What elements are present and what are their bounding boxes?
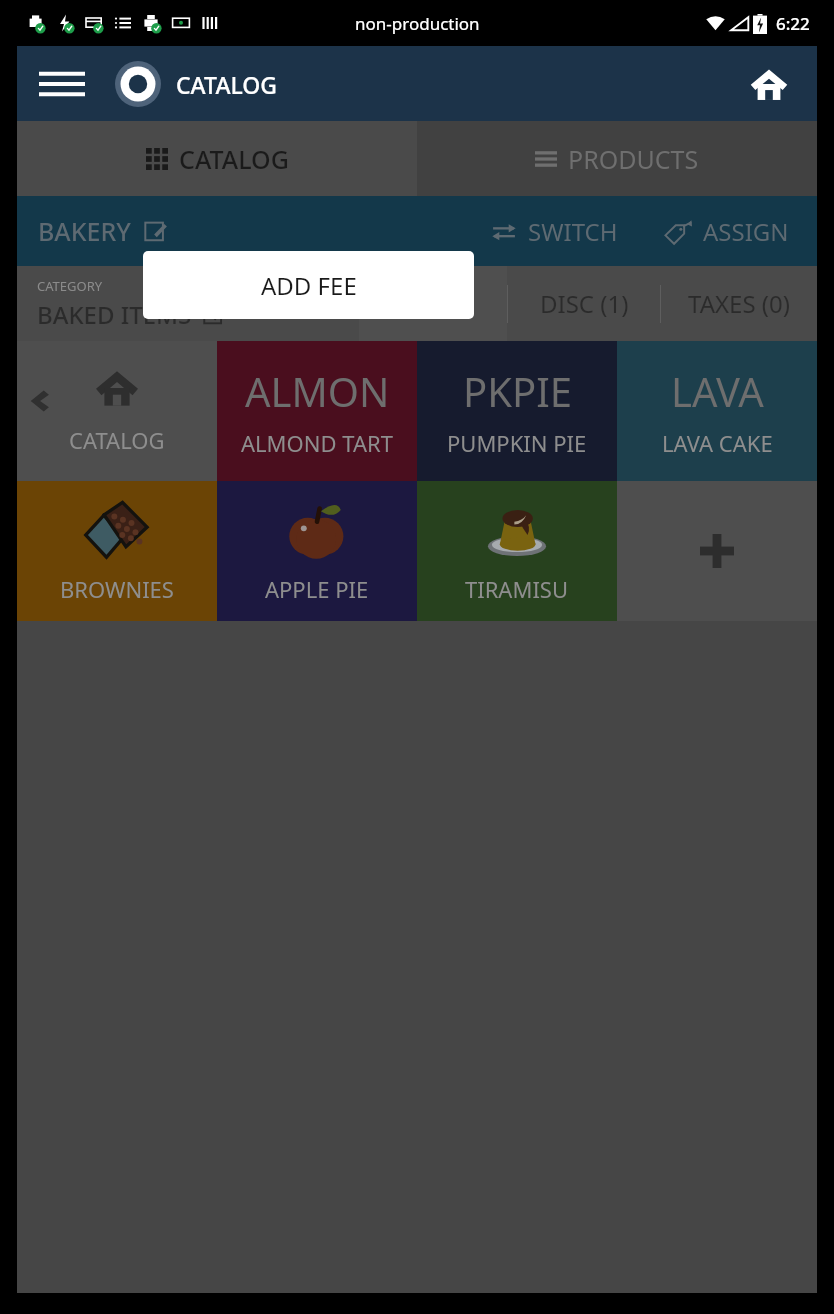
staticText: SWITCH <box>528 215 618 248</box>
button[interactable]: Add product <box>617 481 817 621</box>
staticText: PRODUCTS <box>568 142 699 176</box>
staticText: TIRAMISU <box>465 574 569 604</box>
button[interactable]: PRODUCTS <box>417 121 817 196</box>
staticText: ALMOND TART <box>241 428 393 458</box>
staticText: CATALOG <box>69 425 165 455</box>
button[interactable]: CATALOG <box>17 341 217 481</box>
button[interactable]: APPLE PIE <box>217 481 417 621</box>
button[interactable]: BROWNIES <box>17 481 217 621</box>
button[interactable]: ASSIGN <box>664 215 789 248</box>
staticText: PUMPKIN PIE <box>447 428 587 458</box>
staticText: ALMON <box>245 364 390 418</box>
button[interactable]: Menu <box>36 62 88 106</box>
button[interactable]: PKPIE <box>417 341 617 481</box>
button[interactable]: BAKERY <box>38 214 166 248</box>
staticText: CATALOG <box>179 142 289 176</box>
button[interactable]: TAXES (0) <box>661 266 817 341</box>
button[interactable]: FEE (0) <box>359 266 507 341</box>
button[interactable]: SWITCH <box>491 215 618 248</box>
button[interactable]: CATALOG <box>17 121 417 196</box>
button[interactable]: CATALOG <box>115 61 278 107</box>
staticText: 6:22 <box>776 12 810 35</box>
staticText: FEE (0) <box>396 287 470 320</box>
staticText: BROWNIES <box>60 574 174 604</box>
staticText: LAVA <box>671 364 764 418</box>
button[interactable]: CATEGORY <box>17 266 359 341</box>
staticText: APPLE PIE <box>265 574 369 604</box>
staticText: non-production <box>355 12 480 35</box>
staticText: LAVA CAKE <box>662 428 773 458</box>
staticText: CATALOG <box>176 69 278 100</box>
button[interactable]: LAVA <box>617 341 817 481</box>
button[interactable]: Home <box>743 58 795 110</box>
button[interactable]: TIRAMISU <box>417 481 617 621</box>
staticText: ASSIGN <box>703 215 789 248</box>
staticText: TAXES (0) <box>688 287 790 320</box>
button[interactable]: ALMON <box>217 341 417 481</box>
staticText: DISC (1) <box>540 287 629 320</box>
staticText: BAKED ITEMS <box>37 298 192 331</box>
button[interactable]: DISC (1) <box>508 266 660 341</box>
staticText: CATEGORY <box>37 277 103 295</box>
button[interactable]: ADD FEE <box>143 251 474 319</box>
staticText: PKPIE <box>463 364 572 418</box>
staticText: BAKERY <box>38 214 131 248</box>
staticText: ADD FEE <box>261 269 357 302</box>
